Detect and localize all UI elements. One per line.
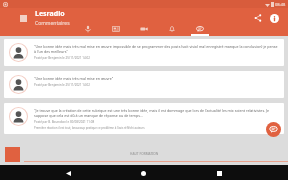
staticText: HAUT FORMATION (130, 152, 159, 156)
button[interactable]: "Une bonne idée mais très mal mise en œu… (4, 71, 284, 98)
staticText: 08:48 (275, 2, 286, 7)
staticText: Première réaction il est tout, beaucoup … (34, 126, 145, 130)
staticText: Posté par Benjamin le 25/11/2021 14:02 (34, 83, 90, 87)
button[interactable]: Share (250, 10, 266, 26)
button[interactable]: Tab (158, 25, 186, 36)
button[interactable]: Tab (74, 25, 102, 36)
button[interactable]: Back (61, 166, 75, 180)
button[interactable]: Tab (130, 25, 158, 36)
button[interactable]: "Une bonne idée mais très mal mise en œu… (4, 39, 284, 66)
button[interactable]: Info (266, 10, 282, 26)
button[interactable]: Home (136, 166, 150, 180)
staticText: Commentaires (35, 20, 70, 27)
staticText: Posté par B. Bounokov le 30/08/2021 11:0… (34, 120, 95, 124)
button[interactable]: Recents (212, 166, 226, 180)
staticText: "Une bonne idée mais très mal mise en œu… (34, 76, 114, 81)
button[interactable]: Menu (16, 11, 30, 25)
staticText: Posté par Benjamin le 25/11/2021 14:02 (34, 56, 90, 60)
button[interactable]: New comment (266, 122, 281, 137)
button[interactable]: Tab (186, 25, 214, 36)
staticText: "Une bonne idée mais très mal mise en œu… (34, 44, 278, 54)
staticText: Lesradio (35, 9, 65, 19)
staticText: "Je trouve que la création de cette rubr… (34, 108, 278, 118)
button[interactable]: Tab (102, 25, 130, 36)
button[interactable]: "Je trouve que la création de cette rubr… (4, 103, 284, 134)
